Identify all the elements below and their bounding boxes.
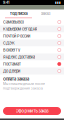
staticText: Boxberry xyxy=(3,48,20,52)
staticText: подтверждения заказа xyxy=(3,86,43,90)
staticText: Почтой России xyxy=(3,34,30,38)
button[interactable]: СДЭК xyxy=(0,39,64,46)
staticText: ▮▮▮ xyxy=(55,1,61,4)
staticText: Постамат xyxy=(3,62,21,66)
button[interactable]: Самовывоз xyxy=(0,18,64,25)
staticText: Оплата заказа xyxy=(3,76,29,81)
staticText: СДЭК xyxy=(3,41,15,45)
button[interactable]: До двери xyxy=(0,67,64,74)
staticText: Оформить заказ xyxy=(15,108,48,114)
button[interactable]: Яндекс Доставка xyxy=(0,53,64,60)
staticText: Заказ xyxy=(40,11,50,16)
button[interactable]: Заказ xyxy=(32,9,59,18)
staticText: Курьером сегодня xyxy=(3,27,37,31)
button[interactable]: Почтой России xyxy=(0,32,64,39)
staticText: 9:41 xyxy=(3,0,9,5)
staticText: Яндекс Доставка xyxy=(3,55,35,59)
staticText: Мы спишем деньги после xyxy=(3,82,45,86)
button[interactable]: Оформить заказ xyxy=(3,107,61,115)
button[interactable]: Постамат xyxy=(0,60,64,67)
staticText: До двери xyxy=(3,69,20,73)
staticText: Самовывоз xyxy=(3,20,24,24)
staticText: Подписка xyxy=(9,11,27,16)
button[interactable]: Курьером сегодня xyxy=(0,25,64,32)
button[interactable]: Boxberry xyxy=(0,46,64,53)
button[interactable]: Подписка xyxy=(5,9,32,18)
